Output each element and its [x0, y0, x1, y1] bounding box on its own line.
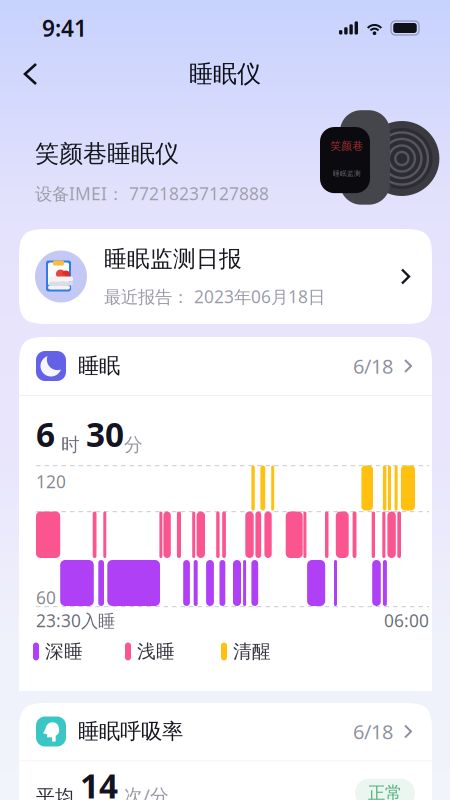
staticText: 清醒	[233, 640, 271, 663]
staticText: 23:30入睡	[36, 609, 115, 632]
button[interactable]: 睡眠	[19, 337, 432, 395]
button[interactable]: 睡眠监测日报	[19, 229, 432, 324]
staticText: 设备IMEI： 77218237127888	[35, 182, 269, 205]
staticText: 次/分	[118, 783, 169, 800]
staticText: 6/18	[353, 353, 393, 379]
staticText: 时	[55, 433, 86, 456]
staticText: 120	[36, 470, 66, 493]
staticText: 睡眠仪	[189, 59, 261, 89]
staticText: 06:00	[384, 609, 429, 632]
staticText: 睡眠监测	[333, 169, 361, 177]
staticText: 浅睡	[137, 640, 175, 663]
staticText: 60	[36, 586, 56, 609]
staticText: 笑颜巷	[330, 139, 363, 153]
staticText: 睡眠	[78, 353, 120, 379]
staticText: 30	[86, 412, 124, 456]
staticText: 6/18	[353, 718, 393, 745]
staticText: 平均	[36, 785, 80, 800]
staticText: 睡眠监测日报	[104, 245, 242, 273]
staticText: 9:41	[42, 13, 87, 43]
staticText: 14	[80, 763, 118, 800]
button[interactable]: 睡眠呼吸率	[19, 702, 432, 760]
staticText: 正常	[368, 782, 402, 800]
staticText: 睡眠呼吸率	[78, 718, 183, 745]
staticText: 6	[36, 412, 55, 456]
staticText: 笑颜巷睡眠仪	[35, 139, 179, 168]
button[interactable]: Back	[0, 53, 59, 95]
staticText: 深睡	[45, 640, 83, 663]
staticText: 分	[124, 433, 143, 456]
staticText: 最近报告： 2023年06月18日	[104, 285, 325, 308]
